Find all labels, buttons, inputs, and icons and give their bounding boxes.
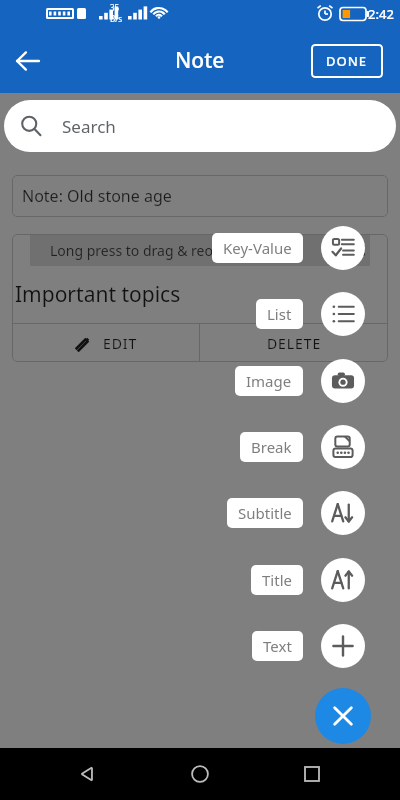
button[interactable]: Close menu	[315, 688, 371, 744]
button[interactable]: Back	[6, 39, 50, 83]
staticText: Key-Value	[223, 238, 292, 258]
button[interactable]: Text	[252, 631, 303, 661]
button[interactable]: Text	[321, 624, 365, 668]
staticText: Text	[263, 636, 292, 656]
button[interactable]: Recents	[288, 750, 336, 798]
staticText: 2:42	[368, 5, 394, 23]
staticText: B/s	[110, 13, 123, 24]
button[interactable]: List	[256, 299, 303, 329]
staticText: Title	[262, 570, 292, 590]
staticText: Important topics	[15, 280, 181, 309]
button[interactable]: Break	[321, 425, 365, 469]
button[interactable]: Home	[176, 750, 224, 798]
button[interactable]: Important topics	[12, 266, 388, 323]
staticText: Search	[62, 115, 116, 138]
staticText: List	[267, 304, 292, 324]
staticText: Long press to drag & reorder	[50, 241, 241, 260]
button[interactable]: DONE	[311, 44, 383, 78]
staticText: Subtitle	[238, 503, 292, 523]
button[interactable]: Title	[251, 565, 303, 595]
staticText: 35	[110, 2, 120, 13]
button[interactable]: Back	[64, 750, 112, 798]
staticText: EDIT	[103, 334, 138, 353]
staticText: DELETE	[267, 334, 322, 353]
button[interactable]: DELETE	[200, 324, 388, 362]
button[interactable]: Search	[4, 100, 396, 152]
button[interactable]: Image	[321, 359, 365, 403]
button[interactable]: Break	[240, 432, 303, 462]
staticText: Note: Old stone age	[22, 185, 172, 207]
staticText: Note	[175, 46, 225, 75]
button[interactable]: Key-Value	[212, 233, 303, 263]
button[interactable]: Title	[321, 558, 365, 602]
button[interactable]: EDIT	[12, 324, 199, 362]
button[interactable]: Note: Old stone age	[12, 175, 388, 217]
staticText: Image	[246, 371, 292, 391]
button[interactable]: List	[321, 292, 365, 336]
button[interactable]: Subtitle	[321, 491, 365, 535]
button[interactable]: Key-Value	[321, 226, 365, 270]
staticText: Break	[251, 437, 292, 457]
button[interactable]: Subtitle	[227, 498, 303, 528]
staticText: DONE	[326, 52, 368, 70]
button[interactable]: Image	[235, 366, 303, 396]
